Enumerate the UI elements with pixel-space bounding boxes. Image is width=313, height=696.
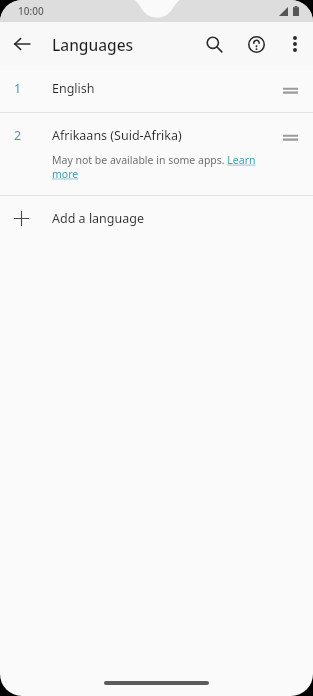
staticText: 1 xyxy=(14,80,22,97)
staticText: English xyxy=(52,80,95,97)
button[interactable]: Reorder English xyxy=(279,82,301,98)
button[interactable]: Search xyxy=(193,23,235,65)
button[interactable]: More options xyxy=(277,26,313,62)
button[interactable]: Reorder Afrikaans (Suid-Afrika) xyxy=(279,129,301,145)
staticText: Languages xyxy=(52,34,134,55)
button[interactable]: Help xyxy=(235,23,277,65)
button[interactable]: Add a language xyxy=(0,196,313,241)
staticText: 10:00 xyxy=(18,4,44,18)
staticText: Add a language xyxy=(52,210,145,227)
staticText: 2 xyxy=(14,127,22,144)
staticText: Afrikaans (Suid-Afrika) xyxy=(52,127,182,144)
staticText: May not be available in some apps. Learn… xyxy=(52,153,271,181)
button[interactable]: Back xyxy=(0,22,44,66)
button[interactable]: 1 xyxy=(0,66,313,112)
button[interactable]: 2 xyxy=(0,113,313,195)
